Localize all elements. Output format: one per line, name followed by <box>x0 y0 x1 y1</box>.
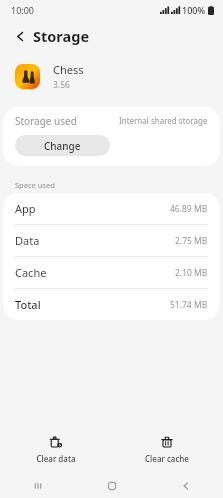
button[interactable]: Data <box>3 225 220 256</box>
button[interactable]: Cache <box>3 257 220 288</box>
staticText: Storage <box>33 26 90 46</box>
staticText: 10:00 <box>11 4 35 16</box>
button[interactable]: Recents <box>0 473 75 498</box>
staticText: Clear data <box>36 453 76 464</box>
button[interactable]: Change <box>15 135 110 156</box>
staticText: 2.10 MB <box>175 267 208 279</box>
staticText: Data <box>15 233 40 248</box>
staticText: Cache <box>15 265 47 280</box>
staticText: Total <box>15 297 41 312</box>
staticText: Internal shared storage <box>119 115 208 126</box>
button[interactable]: Back <box>9 25 31 47</box>
staticText: Storage used <box>15 114 77 128</box>
staticText: Chess <box>53 62 84 77</box>
button[interactable]: Chess <box>0 52 223 100</box>
staticText: 2.75 MB <box>175 235 208 247</box>
staticText: 46.89 MB <box>170 203 208 215</box>
staticText: 100% <box>182 4 206 16</box>
button[interactable]: Total <box>3 289 220 320</box>
staticText: Space used <box>15 180 55 190</box>
button[interactable]: Home <box>75 473 149 498</box>
staticText: Change <box>44 139 81 153</box>
staticText: 3.56 <box>53 79 70 91</box>
button[interactable]: Back <box>149 473 223 498</box>
button[interactable]: App <box>3 193 220 224</box>
button[interactable]: Clear data <box>0 431 111 468</box>
button[interactable]: Clear cache <box>111 431 223 468</box>
staticText: Clear cache <box>145 453 189 464</box>
staticText: 51.74 MB <box>170 299 208 311</box>
staticText: App <box>15 201 36 216</box>
